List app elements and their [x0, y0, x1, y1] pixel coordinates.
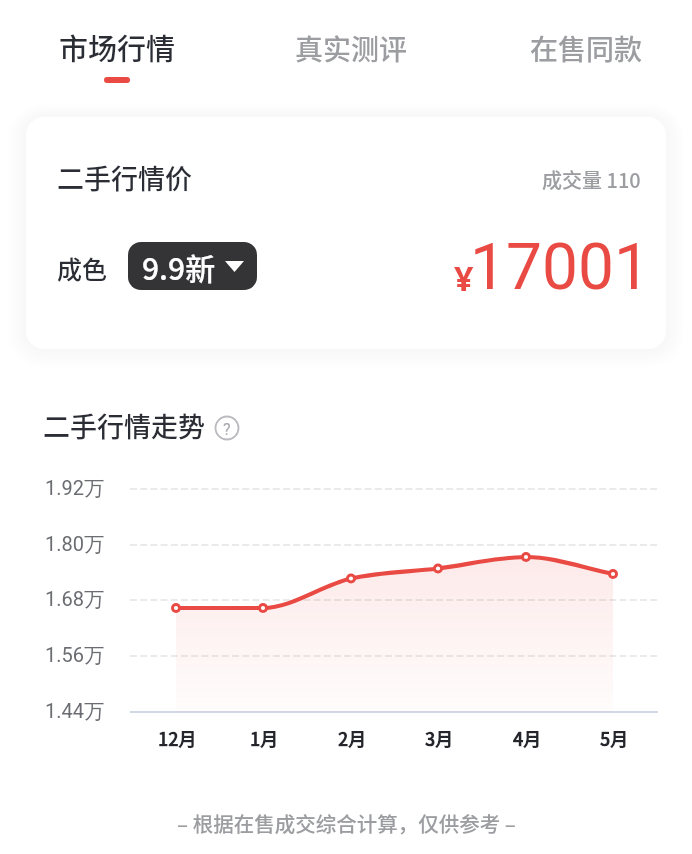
- staticText: 9.9新: [142, 245, 216, 288]
- button[interactable]: 9.9新: [128, 242, 257, 290]
- staticText: ¥: [454, 255, 474, 301]
- staticText: ?: [223, 420, 231, 439]
- staticText: 二手行情价: [57, 158, 192, 197]
- staticText: 成色: [57, 250, 108, 286]
- staticText: 3月: [425, 725, 454, 751]
- staticText: 17001: [470, 230, 650, 305]
- button[interactable]: 真实测评: [279, 20, 423, 76]
- staticText: 真实测评: [295, 28, 408, 69]
- staticText: 在售同款: [530, 28, 643, 69]
- staticText: 1.80万: [45, 532, 104, 557]
- staticText: – 根据在售成交综合计算，仅供参考 –: [177, 808, 516, 838]
- staticText: 1.92万: [45, 476, 104, 501]
- staticText: 12月: [158, 725, 197, 751]
- staticText: 1月: [250, 725, 279, 751]
- staticText: 5月: [600, 725, 629, 751]
- staticText: 1.44万: [45, 699, 104, 724]
- staticText: 1.68万: [45, 587, 104, 612]
- button[interactable]: 市场行情: [43, 18, 191, 76]
- staticText: 2月: [338, 725, 367, 751]
- staticText: 1.56万: [45, 643, 104, 668]
- button[interactable]: 说明: [215, 416, 239, 440]
- staticText: 二手行情走势: [43, 406, 205, 445]
- staticText: 4月: [513, 725, 542, 751]
- button[interactable]: 二手行情走势: [43, 406, 239, 445]
- button[interactable]: 在售同款: [514, 20, 658, 76]
- staticText: 成交量 110: [542, 165, 641, 194]
- staticText: 市场行情: [59, 26, 176, 68]
